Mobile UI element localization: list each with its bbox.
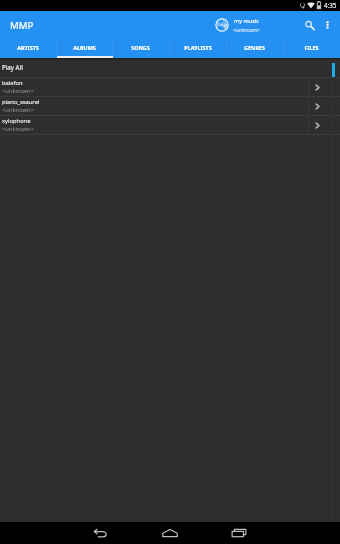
button[interactable]: SONGS — [112, 39, 169, 58]
staticText: <unknown> — [2, 125, 35, 133]
staticText: <unknown> — [2, 106, 35, 114]
staticText: MMP — [10, 19, 34, 32]
button[interactable]: FILES — [283, 39, 340, 58]
button[interactable]: GENRES — [226, 39, 283, 58]
staticText: <unknown> — [2, 87, 35, 95]
button[interactable]: piano_ssaurel — [0, 97, 340, 116]
staticText: GENRES — [244, 44, 265, 51]
staticText: FILES — [304, 44, 319, 51]
button[interactable]: xylophone — [0, 116, 340, 135]
staticText: ARTISTS — [17, 44, 39, 51]
button[interactable]: balafon — [0, 78, 340, 97]
staticText: PLAYLISTS — [184, 44, 212, 51]
button[interactable]: Expand album — [309, 97, 332, 115]
button[interactable]: Expand album — [309, 78, 332, 96]
button[interactable]: Recents — [220, 522, 258, 544]
staticText: 4:35 — [324, 1, 337, 9]
staticText: SONGS — [131, 44, 150, 51]
button[interactable]: Search — [300, 11, 319, 39]
button[interactable]: Play All — [0, 58, 340, 78]
button[interactable]: Expand album — [309, 116, 332, 134]
staticText: <unknown> — [233, 27, 260, 34]
staticText: Play All — [2, 63, 23, 71]
button[interactable]: PLAYLISTS — [169, 39, 226, 58]
staticText: ALBUMS — [73, 44, 96, 51]
button[interactable]: More options — [319, 11, 336, 39]
button[interactable]: Back — [82, 522, 120, 544]
staticText: my music — [234, 17, 260, 25]
button[interactable]: my music — [215, 11, 260, 39]
button[interactable]: ARTISTS — [0, 39, 56, 58]
staticText: xylophone — [2, 117, 31, 125]
button[interactable]: Home — [151, 522, 189, 544]
button[interactable]: ALBUMS — [56, 39, 112, 58]
staticText: balafon — [2, 79, 23, 87]
staticText: piano_ssaurel — [2, 98, 40, 106]
